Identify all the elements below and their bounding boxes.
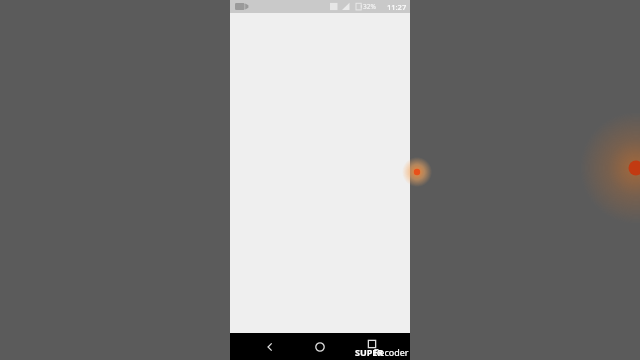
staticText: 32% [363,2,376,11]
staticText: 11:27 [387,2,407,12]
button[interactable]: Recent apps [360,332,384,356]
staticText: Recoder [355,346,409,358]
button[interactable]: Home [308,335,332,359]
staticText: SUPER [355,346,386,358]
button[interactable]: Back [258,335,282,359]
button[interactable]: Recorder button [390,152,430,192]
